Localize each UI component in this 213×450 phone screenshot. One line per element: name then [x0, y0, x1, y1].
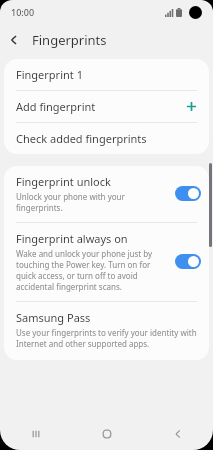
button[interactable]: Back: [0, 26, 28, 54]
staticText: Fingerprint unlock: [16, 174, 111, 189]
staticText: Fingerprints: [32, 31, 107, 49]
button[interactable]: Check added fingerprints: [4, 123, 209, 154]
staticText: 10:00: [11, 6, 35, 18]
button[interactable]: Home: [71, 418, 142, 450]
button[interactable]: Fingerprint always on: [4, 223, 209, 301]
staticText: Wake and unlock your phone just by touch…: [16, 248, 169, 292]
button[interactable]: Toggle on: [175, 186, 201, 201]
button[interactable]: Add fingerprint: [4, 91, 209, 122]
button[interactable]: Back: [142, 418, 213, 450]
button[interactable]: Fingerprint unlock: [4, 166, 209, 222]
button[interactable]: Recent apps: [0, 418, 71, 450]
staticText: Unlock your phone with your fingerprints…: [16, 191, 169, 213]
button[interactable]: Samsung Pass: [4, 302, 209, 360]
staticText: Fingerprint always on: [16, 231, 128, 246]
staticText: Check added fingerprints: [16, 131, 147, 146]
staticText: Samsung Pass: [16, 310, 91, 325]
staticText: Fingerprint 1: [16, 67, 83, 82]
staticText: Use your fingerprints to verify your ide…: [16, 327, 197, 349]
staticText: Add fingerprint: [16, 99, 96, 114]
button[interactable]: Fingerprint 1: [4, 59, 209, 90]
button[interactable]: Toggle on: [175, 254, 201, 269]
